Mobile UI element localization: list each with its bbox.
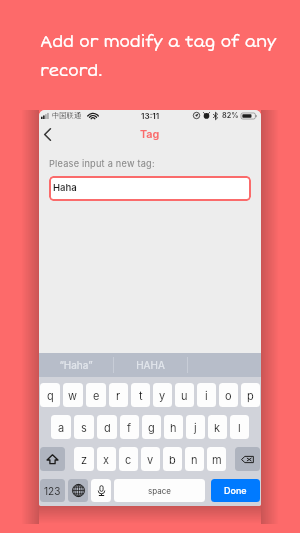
button[interactable]: b	[163, 447, 182, 471]
button[interactable]: t	[131, 383, 150, 407]
staticText: l	[238, 421, 241, 434]
button[interactable]: HAHA	[113, 353, 187, 377]
staticText: x	[103, 453, 110, 466]
button[interactable]: Done	[211, 479, 260, 502]
staticText: Tag	[140, 128, 160, 141]
staticText: space	[148, 486, 171, 496]
staticText: m	[212, 453, 222, 466]
button[interactable]: d	[97, 415, 117, 439]
staticText: 中国联通	[52, 111, 82, 120]
button[interactable]: w	[63, 383, 83, 407]
button[interactable]: Key	[235, 447, 260, 471]
button[interactable]: Haha	[49, 176, 251, 201]
button[interactable]: x	[97, 447, 116, 471]
staticText: t	[139, 389, 143, 402]
button[interactable]: space	[114, 479, 205, 502]
button[interactable]: Back	[39, 122, 56, 146]
button[interactable]: s	[74, 415, 94, 439]
staticText: Add or modify a tag of any record.	[40, 32, 276, 81]
staticText: a	[58, 421, 65, 434]
staticText: r	[116, 389, 121, 402]
button[interactable]: Emoji keyboard	[68, 479, 88, 502]
staticText: i	[205, 389, 208, 402]
staticText: o	[225, 389, 232, 402]
button[interactable]: a	[51, 415, 71, 439]
staticText: 123	[44, 485, 61, 497]
button[interactable]: y	[153, 383, 172, 407]
staticText: j	[194, 421, 197, 434]
staticText: p	[247, 389, 254, 402]
button[interactable]: m	[207, 447, 226, 471]
staticText: c	[125, 453, 132, 466]
staticText: v	[147, 453, 154, 466]
button[interactable]: l	[230, 415, 249, 439]
button[interactable]: p	[241, 383, 260, 407]
staticText: Please input a new tag:	[49, 158, 155, 169]
button[interactable]: j	[186, 415, 205, 439]
button[interactable]: 123	[40, 479, 65, 502]
button[interactable]: i	[197, 383, 216, 407]
staticText: f	[127, 421, 132, 434]
staticText: 13:11	[141, 111, 160, 121]
button[interactable]: u	[175, 383, 194, 407]
staticText: b	[169, 453, 176, 466]
button[interactable]: c	[119, 447, 138, 471]
staticText: k	[214, 421, 221, 434]
button[interactable]: Dictation	[91, 479, 111, 502]
staticText: y	[159, 389, 166, 402]
staticText: 82%	[222, 111, 239, 120]
staticText: g	[148, 421, 155, 434]
staticText: Done	[224, 485, 247, 496]
staticText: Haha	[53, 182, 77, 193]
staticText: s	[81, 421, 87, 434]
button[interactable]: “Haha”	[39, 353, 113, 377]
staticText: u	[181, 389, 188, 402]
button[interactable]: n	[185, 447, 204, 471]
staticText: q	[47, 389, 54, 402]
staticText: HAHA	[136, 359, 165, 371]
button[interactable]: o	[219, 383, 238, 407]
staticText: h	[170, 421, 177, 434]
button[interactable]: e	[86, 383, 106, 407]
staticText: z	[81, 453, 88, 466]
button[interactable]: k	[208, 415, 227, 439]
button[interactable]: h	[164, 415, 183, 439]
button[interactable]: z	[74, 447, 94, 471]
staticText: “Haha”	[59, 359, 93, 371]
button[interactable]: q	[40, 383, 60, 407]
button[interactable]: v	[141, 447, 160, 471]
button[interactable]: Key	[40, 447, 65, 471]
button[interactable]: g	[142, 415, 161, 439]
staticText: w	[68, 389, 78, 402]
button[interactable]: f	[120, 415, 139, 439]
staticText: n	[191, 453, 198, 466]
button[interactable]: r	[109, 383, 128, 407]
staticText: d	[104, 421, 111, 434]
staticText: e	[93, 389, 100, 402]
